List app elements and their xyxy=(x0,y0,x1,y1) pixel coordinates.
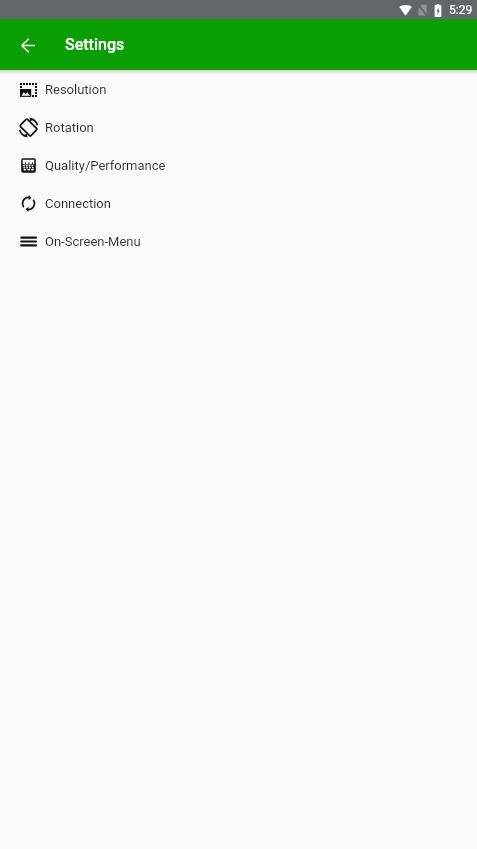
button[interactable]: Back xyxy=(14,31,42,59)
button[interactable]: Connection xyxy=(0,184,477,222)
staticText: Connection xyxy=(45,196,111,211)
staticText: Quality/Performance xyxy=(45,158,166,173)
staticText: On-Screen-Menu xyxy=(45,234,141,249)
button[interactable]: Rotation xyxy=(0,108,477,146)
staticText: 5:29 xyxy=(449,3,473,17)
button[interactable]: Quality/Performance xyxy=(0,146,477,184)
staticText: Settings xyxy=(65,35,125,54)
button[interactable]: On-Screen-Menu xyxy=(0,222,477,260)
button[interactable]: Resolution xyxy=(0,70,477,108)
staticText: Rotation xyxy=(45,120,94,135)
staticText: Resolution xyxy=(45,82,107,97)
